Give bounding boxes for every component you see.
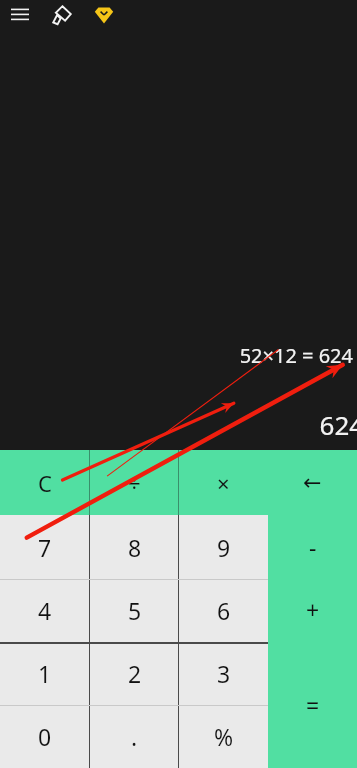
staticText: 4: [38, 595, 52, 626]
staticText: C: [38, 468, 52, 498]
staticText: 52×12 = 624: [239, 342, 353, 369]
staticText: 6240: [319, 407, 357, 442]
button[interactable]: 2: [90, 642, 179, 705]
button[interactable]: -: [268, 515, 357, 578]
button[interactable]: 4: [0, 579, 90, 642]
button[interactable]: Menu: [4, 0, 36, 30]
staticText: ×: [217, 468, 230, 498]
button[interactable]: %: [179, 705, 268, 768]
staticText: 5: [128, 595, 142, 626]
staticText: 6: [217, 595, 231, 626]
button[interactable]: 6: [179, 579, 268, 642]
button[interactable]: Themes: [46, 0, 78, 30]
button[interactable]: =: [268, 641, 357, 768]
staticText: 8: [128, 532, 142, 563]
staticText: ÷: [128, 468, 141, 498]
staticText: ←: [303, 470, 322, 496]
button[interactable]: 9: [179, 515, 268, 579]
button[interactable]: 3: [179, 642, 268, 705]
button[interactable]: ÷: [90, 450, 179, 515]
staticText: 2: [128, 658, 142, 689]
staticText: %: [214, 721, 234, 752]
staticText: 9: [217, 532, 231, 563]
button[interactable]: +: [268, 578, 357, 641]
button[interactable]: .: [90, 705, 179, 768]
staticText: +: [306, 594, 320, 625]
button[interactable]: 8: [90, 515, 179, 579]
button[interactable]: 1: [0, 642, 90, 705]
staticText: 0: [38, 721, 52, 752]
staticText: 7: [38, 532, 52, 563]
button[interactable]: ×: [179, 450, 268, 515]
button[interactable]: 7: [0, 515, 90, 579]
button[interactable]: 5: [90, 579, 179, 642]
staticText: =: [306, 689, 320, 720]
staticText: -: [309, 531, 317, 562]
staticText: 1: [38, 658, 52, 689]
staticText: 3: [217, 658, 231, 689]
button[interactable]: Backspace: [268, 450, 357, 515]
staticText: .: [131, 721, 138, 752]
button[interactable]: 0: [0, 705, 90, 768]
button[interactable]: C: [0, 450, 90, 515]
button[interactable]: Premium: [88, 0, 120, 30]
